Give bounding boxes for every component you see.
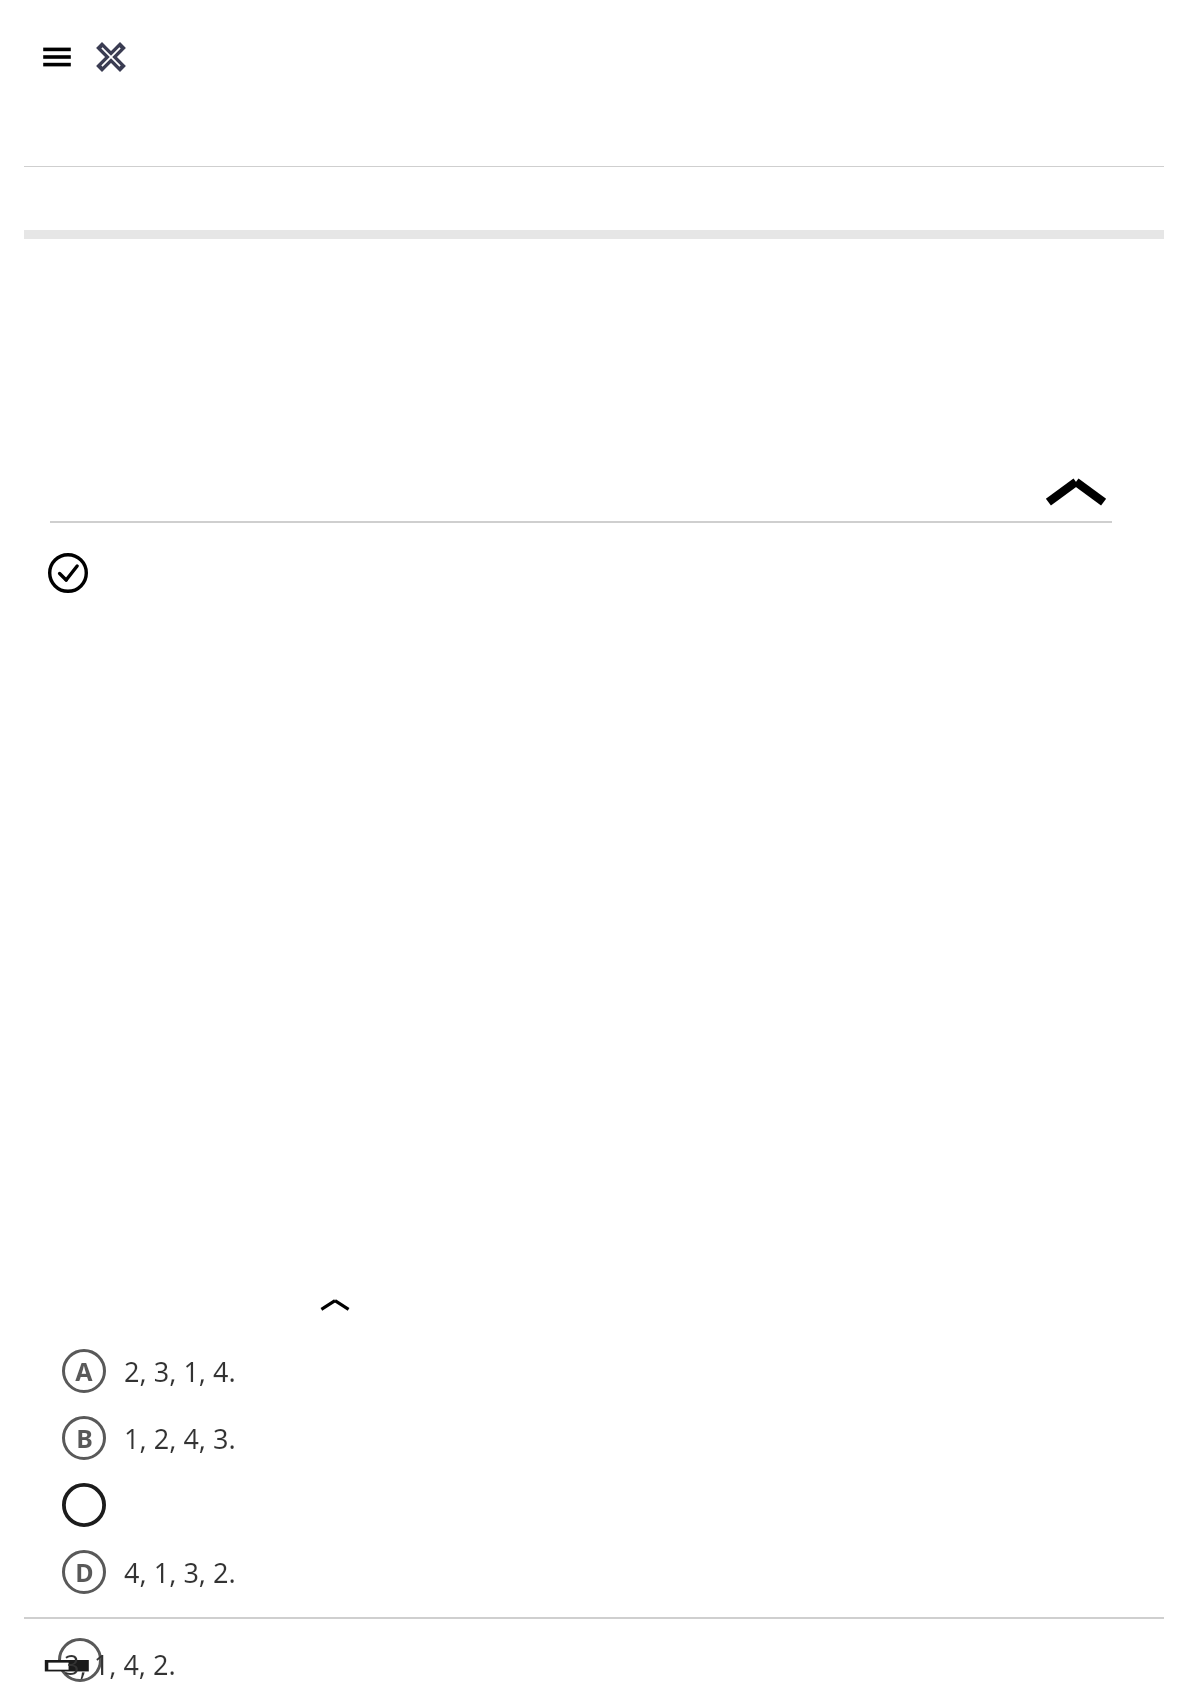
button[interactable]: Expand (318, 1288, 352, 1322)
staticText: 3, 1, 4, 2. (64, 1646, 176, 1682)
button[interactable]: Correct answer (46, 551, 90, 595)
staticText: 1, 2, 4, 3. (124, 1420, 236, 1457)
button[interactable]: B (0, 1409, 1188, 1467)
button[interactable]: D (0, 1543, 1188, 1601)
staticText: A (75, 1354, 93, 1388)
button[interactable]: 3, 1, 4, 2. (0, 1638, 1188, 1682)
staticText: 2, 3, 1, 4. (124, 1353, 236, 1390)
button[interactable]: Collapse (1046, 462, 1106, 522)
button[interactable] (0, 1476, 1188, 1534)
button[interactable]: Close (88, 34, 134, 80)
staticText: D (75, 1555, 94, 1589)
staticText: 4, 1, 3, 2. (124, 1554, 236, 1591)
staticText: B (76, 1421, 93, 1455)
button[interactable]: Menu (34, 34, 80, 80)
button[interactable]: A (0, 1342, 1188, 1400)
